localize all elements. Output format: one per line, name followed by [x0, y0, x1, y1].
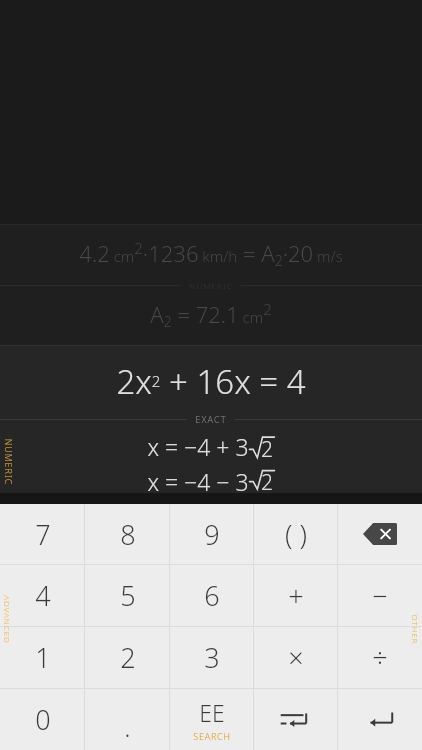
staticText: 8: [120, 516, 136, 553]
staticText: x = −4 − 3: [147, 466, 249, 493]
staticText: ADVANCED: [2, 595, 13, 644]
staticText: SEARCH: [193, 730, 231, 742]
staticText: 2: [261, 435, 273, 464]
button[interactable]: 1: [0, 627, 85, 688]
staticText: ÷: [372, 639, 388, 676]
staticText: NUMERIC: [2, 438, 14, 485]
staticText: x = −4 + 3: [147, 431, 249, 462]
staticText: OTHER: [410, 614, 421, 645]
button[interactable]: Enter: [338, 689, 422, 750]
staticText: A2 = 72.1 cm2: [150, 299, 272, 331]
button[interactable]: ( ): [254, 504, 338, 564]
staticText: 3: [204, 639, 220, 676]
button[interactable]: NUMERIC: [0, 424, 16, 500]
button[interactable]: ÷: [338, 627, 422, 688]
staticText: EE: [199, 697, 225, 728]
button[interactable]: .: [85, 689, 170, 750]
button[interactable]: 7: [0, 504, 85, 564]
staticText: 2x2 + 16x = 4: [116, 359, 306, 404]
button[interactable]: −: [338, 565, 422, 626]
button[interactable]: 4: [0, 565, 85, 626]
button[interactable]: Backspace: [338, 504, 422, 564]
staticText: ( ): [285, 516, 307, 553]
staticText: 2: [261, 468, 273, 495]
staticText: ×: [288, 639, 304, 676]
staticText: 0: [35, 701, 51, 738]
staticText: 7: [35, 516, 51, 553]
staticText: 2: [120, 639, 136, 676]
staticText: −: [372, 577, 388, 614]
staticText: +: [288, 577, 304, 614]
button[interactable]: OTHER: [408, 598, 422, 660]
button[interactable]: EE: [170, 689, 254, 750]
staticText: NUMERIC: [189, 280, 233, 291]
button[interactable]: ×: [254, 627, 338, 688]
staticText: .: [124, 709, 131, 744]
button[interactable]: ADVANCED: [0, 578, 14, 660]
button[interactable]: 3: [170, 627, 254, 688]
staticText: 4.2 cm2·1236 km/h = A2·20 m/s: [79, 238, 343, 270]
button[interactable]: New line: [254, 689, 338, 750]
staticText: 5: [120, 577, 136, 614]
button[interactable]: +: [254, 565, 338, 626]
button[interactable]: 2: [85, 627, 170, 688]
button[interactable]: 5: [85, 565, 170, 626]
staticText: 4: [35, 577, 51, 614]
staticText: 6: [204, 577, 220, 614]
button[interactable]: 6: [170, 565, 254, 626]
button[interactable]: 8: [85, 504, 170, 564]
staticText: EXACT: [195, 413, 227, 425]
button[interactable]: 9: [170, 504, 254, 564]
staticText: 1: [35, 639, 51, 676]
staticText: 9: [204, 516, 220, 553]
button[interactable]: 0: [0, 689, 85, 750]
